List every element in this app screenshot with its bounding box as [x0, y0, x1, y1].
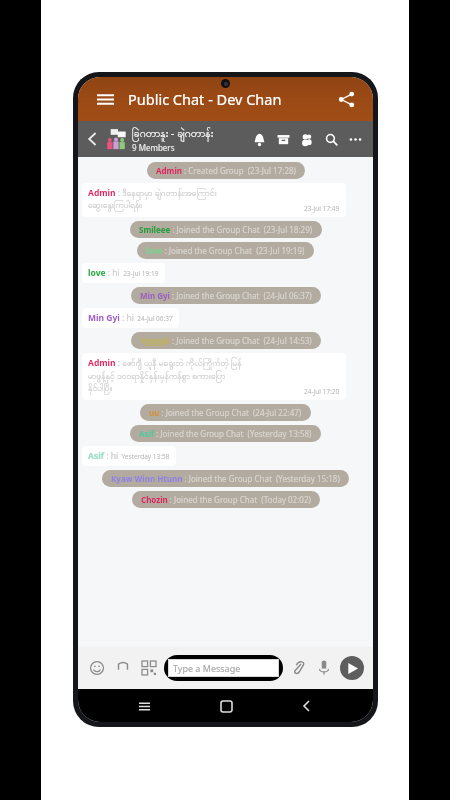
button[interactable]: Members [295, 127, 319, 151]
staticText: love : hi 23-Jul 19:19 [88, 267, 159, 279]
staticText: ဆွေးနွေးကြပါရန်။ [88, 200, 142, 213]
staticText: Admin : ဇော်ဂျီ ယူနီ မရွေးဘဲ ကိုယ်ကြိုက်… [88, 357, 242, 370]
staticText: Yggggb : Joined the Group Chat (24-Jul 1… [140, 335, 312, 346]
staticText: Admin : Created Group (23-Jul 17:28) [156, 165, 296, 176]
staticText: Smileee : Joined the Group Chat (23-Jul … [139, 224, 313, 235]
button[interactable]: love : hi 23-Jul 19:19 [82, 263, 165, 283]
button[interactable]: Home [211, 691, 241, 721]
staticText: ခြဲဂတာနူး - ချဲဂတာန်း [132, 126, 214, 142]
button[interactable]: Admin : ဇော်ဂျီ ယူနီ မရွေးဘဲ ကိုယ်ကြိုက်… [82, 353, 346, 400]
button[interactable]: Attach [285, 655, 311, 681]
button[interactable]: Back [82, 128, 104, 150]
button[interactable]: Menu [90, 84, 120, 114]
button[interactable]: Archive [271, 127, 295, 151]
staticText: Admin : ဒီနေရာမှာ ချဲဂတာန်းအကြောင်း [88, 187, 217, 200]
staticText: 24-Jul 17:20 [304, 387, 340, 396]
staticText: 9 Members [132, 142, 175, 153]
button[interactable]: Asif : Joined the Group Chat (Yesterday … [130, 425, 321, 442]
staticText: uu : Joined the Group Chat (24-Jul 22:47… [149, 407, 302, 418]
button[interactable]: Voice message [311, 655, 337, 681]
button[interactable]: Asif : hi Yesterday 13:58 [82, 446, 176, 466]
button[interactable]: Group avatar [104, 127, 128, 151]
staticText: Kyaw Winn Htunn : Joined the Group Chat … [111, 473, 340, 484]
button[interactable]: Min Gyi : Joined the Group Chat (24-Jul … [131, 287, 321, 304]
staticText: Public Chat - Dev Chan [128, 89, 282, 109]
button[interactable]: Emoji [84, 655, 110, 681]
button[interactable]: Admin : Created Group (23-Jul 17:28) [147, 162, 305, 179]
button[interactable]: love : Joined the Group Chat (23-Jul 19:… [137, 242, 314, 259]
button[interactable]: More options [343, 127, 367, 151]
button[interactable]: Kyaw Winn Htunn : Joined the Group Chat … [102, 470, 349, 487]
button[interactable]: Yggggb : Joined the Group Chat (24-Jul 1… [131, 332, 321, 349]
staticText: Min Gyi : hi 24-Jul 06:37 [88, 312, 173, 324]
staticText: မာဖွန့်နှင့် ၁၀၀ရာနှိုင်နှန်းမှန်ကန်စွာ … [88, 370, 226, 383]
staticText: Type a Message [173, 662, 241, 674]
staticText: နိုင်ပါပြီ။ [88, 383, 113, 396]
staticText: Asif : Joined the Group Chat (Yesterday … [139, 428, 312, 439]
button[interactable]: Smileee : Joined the Group Chat (23-Jul … [130, 221, 322, 238]
staticText: love : Joined the Group Chat (23-Jul 19:… [146, 245, 305, 256]
staticText: 23-Jul 17:49 [304, 204, 340, 213]
button[interactable]: Min Gyi : hi 24-Jul 06:37 [82, 308, 179, 328]
button[interactable]: Search [319, 127, 343, 151]
button[interactable]: Share [331, 84, 361, 114]
button[interactable]: Notifications [247, 127, 271, 151]
button[interactable]: uu : Joined the Group Chat (24-Jul 22:47… [140, 404, 311, 421]
button[interactable]: Recent apps [129, 691, 159, 721]
button[interactable]: Type a Message [168, 659, 279, 677]
staticText: Asif : hi Yesterday 13:58 [88, 450, 170, 462]
button[interactable]: Back [292, 691, 322, 721]
button[interactable]: Chozin : Joined the Group Chat (Today 02… [132, 491, 320, 508]
button[interactable]: Sticker [136, 655, 162, 681]
button[interactable]: Send [337, 653, 367, 683]
staticText: Min Gyi : Joined the Group Chat (24-Jul … [140, 290, 312, 301]
button[interactable]: GIF [110, 655, 136, 681]
staticText: Chozin : Joined the Group Chat (Today 02… [141, 494, 311, 505]
button[interactable]: Admin : ဒီနေရာမှာ ချဲဂတာန်းအကြောင်း [82, 183, 346, 217]
